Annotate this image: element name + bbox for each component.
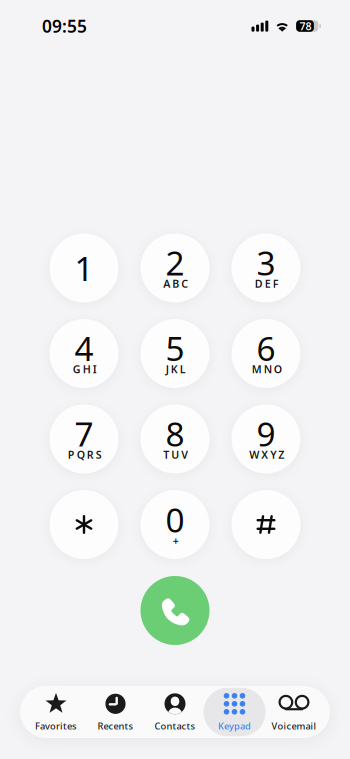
button[interactable]: 3 [231,233,300,302]
staticText: 0 [165,497,184,542]
button[interactable]: Recents [86,687,145,736]
staticText: G H I [73,362,97,376]
staticText: 78 [299,19,311,33]
staticText: W X Y Z [249,447,284,462]
button[interactable]: 4 [49,319,118,388]
staticText: + [173,533,179,548]
button[interactable]: Voicemail [264,687,324,736]
staticText: A B C [163,276,188,291]
button[interactable]: 5 [140,319,209,388]
staticText: T U V [163,447,188,462]
staticText: 7 [74,411,93,456]
button[interactable]: 8 [140,404,209,473]
staticText: 09:55 [42,14,87,37]
staticText: Voicemail [271,720,316,732]
button[interactable]: 0 [140,490,209,559]
button[interactable]: 6 [231,319,300,388]
staticText: 2 [165,240,184,285]
staticText: 5 [165,326,184,370]
button[interactable]: 9 [231,404,300,473]
staticText: 6 [256,326,275,370]
button[interactable]: 7 [49,404,118,473]
staticText: Contacts [154,720,195,732]
staticText: 4 [74,326,93,370]
staticText: Recents [97,720,133,732]
staticText: 8 [165,411,184,456]
button[interactable]: Star [49,490,118,559]
staticText: 3 [256,240,275,285]
staticText: D E F [255,276,279,291]
button[interactable]: Call [140,576,209,645]
staticText: Favorites [35,720,77,732]
button[interactable]: Keypad [205,687,264,736]
staticText: P Q R S [68,447,102,462]
staticText: J K L [166,362,186,376]
button[interactable]: 2 [140,233,209,302]
staticText: 1 [74,246,93,290]
button[interactable]: Favorites [26,687,86,736]
button[interactable]: Pound [231,490,300,559]
button[interactable]: Contacts [145,687,205,736]
staticText: 9 [256,411,275,456]
staticText: M N O [252,362,282,376]
button[interactable]: 1 [49,233,118,302]
staticText: Keypad [218,720,251,732]
